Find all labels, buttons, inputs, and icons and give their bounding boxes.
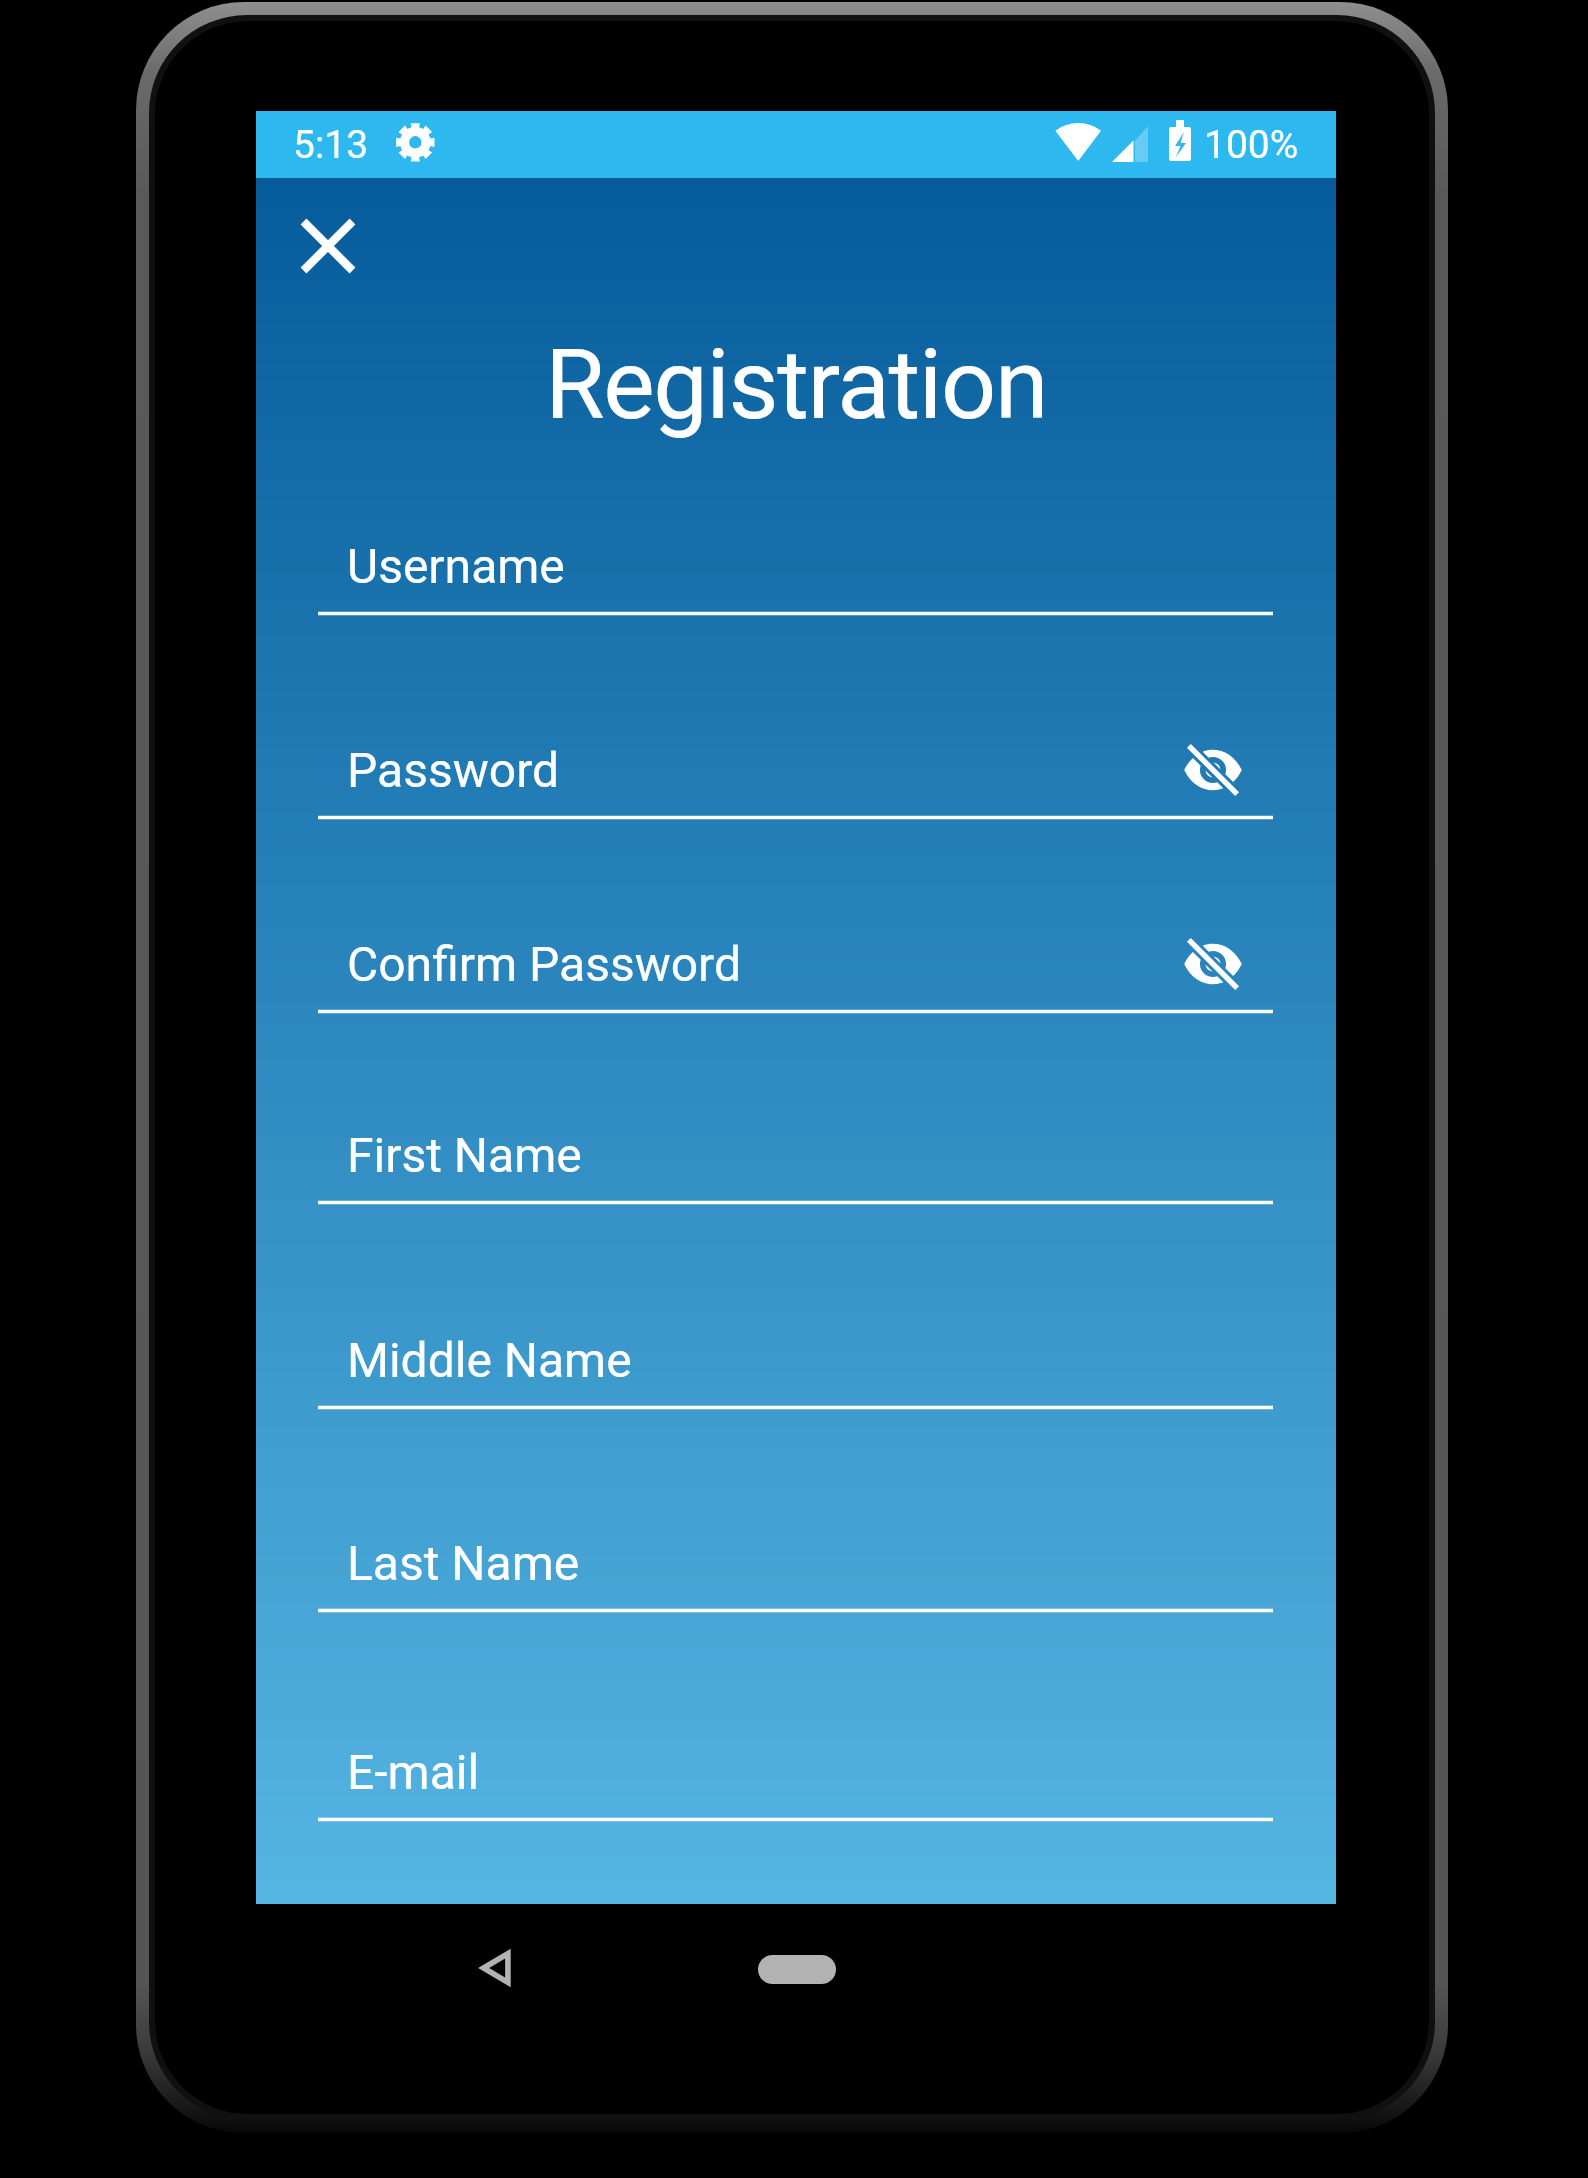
staticText: Username — [347, 538, 565, 594]
button[interactable]: Back — [437, 1909, 557, 2029]
button[interactable]: Home — [737, 1909, 857, 2029]
button[interactable]: Close — [284, 202, 372, 290]
button[interactable]: Middle Name — [318, 1314, 1273, 1410]
button[interactable]: Last Name — [318, 1517, 1273, 1613]
staticText: Password — [347, 742, 560, 798]
staticText: Confirm Password — [347, 936, 742, 992]
staticText: Middle Name — [347, 1332, 632, 1388]
button[interactable]: Show password — [1177, 928, 1249, 1000]
button[interactable]: Show password — [1177, 734, 1249, 806]
staticText: 5:13 — [293, 122, 369, 168]
staticText: First Name — [347, 1127, 582, 1183]
button[interactable]: E-mail — [318, 1726, 1273, 1822]
staticText: E-mail — [347, 1744, 480, 1800]
button[interactable]: Password — [318, 724, 1273, 820]
button[interactable]: First Name — [318, 1109, 1273, 1205]
button[interactable]: Username — [318, 520, 1273, 616]
staticText: Registration — [256, 328, 1336, 442]
staticText: Last Name — [347, 1535, 580, 1591]
button[interactable]: Confirm Password — [318, 918, 1273, 1014]
staticText: 100% — [1204, 122, 1299, 168]
